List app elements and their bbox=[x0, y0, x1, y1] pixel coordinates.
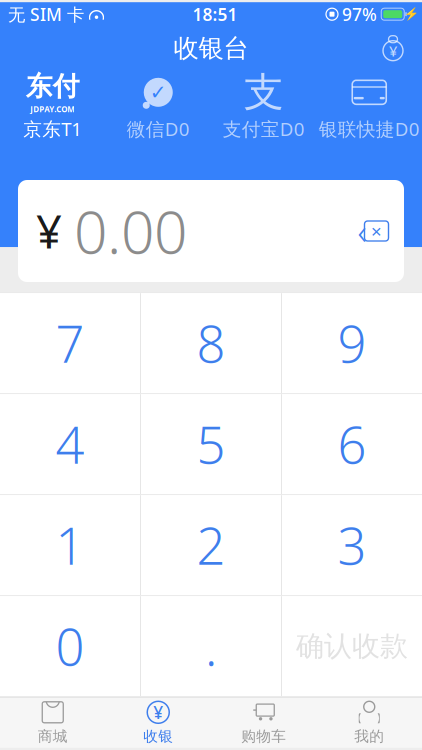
staticText: 商城 bbox=[38, 727, 68, 745]
staticText: 购物车 bbox=[241, 727, 286, 745]
staticText: 支 bbox=[244, 68, 284, 117]
staticText: 2 bbox=[196, 512, 225, 579]
staticText: 东付 bbox=[26, 70, 80, 103]
button[interactable]: 确认收款 bbox=[282, 596, 422, 696]
button[interactable]: 我的 bbox=[316, 698, 422, 748]
staticText: ‹ bbox=[357, 208, 366, 254]
staticText: 0 bbox=[55, 613, 84, 680]
button[interactable]: 9 bbox=[282, 293, 422, 393]
staticText: 京东T1 bbox=[23, 116, 82, 141]
staticText: 97% bbox=[342, 3, 377, 26]
button[interactable]: 收款记录 bbox=[370, 28, 416, 68]
staticText: 收银台 bbox=[173, 33, 248, 64]
button[interactable]: 8 bbox=[141, 293, 281, 393]
button[interactable]: 0 bbox=[0, 596, 140, 696]
staticText: ¥ bbox=[153, 701, 163, 724]
button[interactable]: 东付 bbox=[0, 70, 105, 146]
staticText: 9 bbox=[337, 310, 366, 377]
button[interactable]: 6 bbox=[282, 394, 422, 494]
staticText: JDPAY.COM bbox=[30, 104, 75, 114]
staticText: × bbox=[371, 219, 382, 243]
staticText: ⚡ bbox=[404, 7, 419, 21]
button[interactable]: 4 bbox=[0, 394, 140, 494]
staticText: ¥ bbox=[389, 41, 397, 60]
staticText: 7 bbox=[55, 310, 84, 377]
button[interactable]: 银联快捷D0 bbox=[316, 70, 422, 146]
button[interactable]: . bbox=[141, 596, 281, 696]
staticText: ✓ bbox=[150, 81, 167, 104]
button[interactable]: 支 bbox=[211, 70, 316, 146]
staticText: . bbox=[205, 613, 217, 680]
button[interactable]: ✓ bbox=[105, 70, 211, 146]
staticText: 6 bbox=[337, 411, 366, 478]
staticText: 0.00 bbox=[74, 192, 187, 270]
staticText: 3 bbox=[337, 512, 366, 579]
button[interactable]: 7 bbox=[0, 293, 140, 393]
staticText: 银联快捷D0 bbox=[319, 116, 420, 141]
button[interactable]: 删除 bbox=[342, 205, 404, 257]
staticText: 我的 bbox=[354, 727, 384, 745]
staticText: 8 bbox=[196, 310, 225, 377]
button[interactable]: 2 bbox=[141, 495, 281, 595]
staticText: ¥ bbox=[36, 201, 62, 261]
staticText: 收银 bbox=[143, 727, 173, 745]
staticText: 1 bbox=[55, 512, 84, 579]
button[interactable]: 3 bbox=[282, 495, 422, 595]
staticText: 18:51 bbox=[192, 3, 237, 26]
staticText: 无 SIM 卡 bbox=[8, 3, 84, 26]
button[interactable]: 商城 bbox=[0, 698, 105, 748]
staticText: 4 bbox=[55, 411, 84, 478]
staticText: 微信D0 bbox=[127, 116, 190, 141]
button[interactable]: 1 bbox=[0, 495, 140, 595]
staticText: 支付宝D0 bbox=[223, 116, 305, 141]
staticText: 确认收款 bbox=[296, 629, 408, 663]
button[interactable]: ¥ bbox=[105, 698, 211, 748]
staticText: 5 bbox=[196, 411, 225, 478]
button[interactable]: 5 bbox=[141, 394, 281, 494]
button[interactable]: 购物车 bbox=[211, 698, 316, 748]
